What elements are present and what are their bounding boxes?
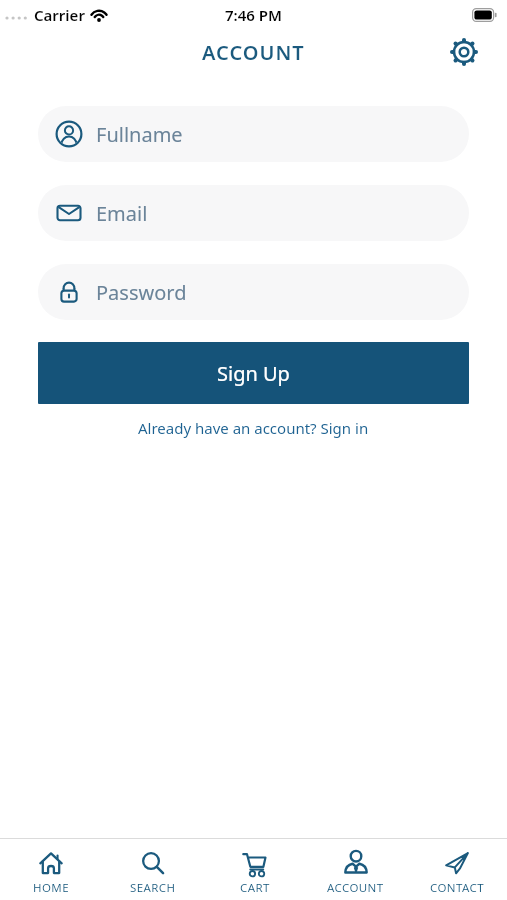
button[interactable]: Already have an account? Sign in (0, 418, 507, 438)
button[interactable]: Sign Up (38, 342, 469, 404)
button[interactable]: ACCOUNT (305, 839, 406, 900)
staticText: SEARCH (130, 880, 176, 896)
staticText: Email (96, 200, 148, 227)
button[interactable] (448, 36, 480, 68)
button[interactable]: CONTACT (406, 839, 507, 900)
staticText: Password (96, 279, 187, 306)
staticText: Already have an account? Sign in (138, 418, 369, 438)
staticText: ACCOUNT (327, 880, 384, 896)
button[interactable]: CART (204, 839, 305, 900)
staticText: HOME (33, 880, 69, 896)
staticText: 7:46 PM (225, 5, 282, 25)
staticText: Carrier (34, 5, 85, 25)
button[interactable]: HOME (0, 839, 102, 900)
staticText: CONTACT (430, 880, 484, 896)
button[interactable]: Email (38, 185, 469, 241)
staticText: CART (240, 880, 270, 896)
button[interactable]: SEARCH (102, 839, 204, 900)
staticText: Fullname (96, 121, 183, 148)
button[interactable]: Password (38, 264, 469, 320)
button[interactable]: Fullname (38, 106, 469, 162)
staticText: ACCOUNT (202, 39, 305, 66)
staticText: Sign Up (217, 360, 290, 387)
